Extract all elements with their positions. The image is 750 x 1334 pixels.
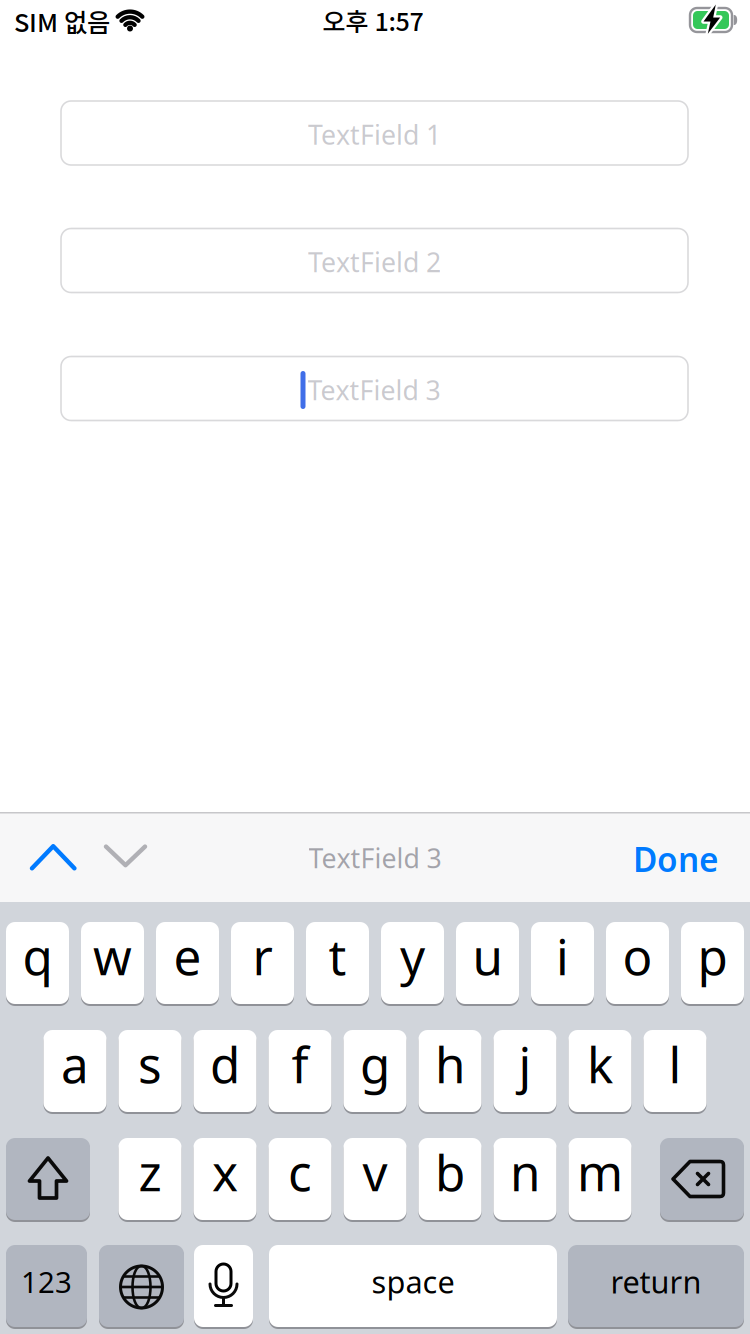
button[interactable]: Shift [6, 1137, 90, 1221]
staticText: z [138, 1139, 161, 1205]
button[interactable]: Next keyboard [99, 1244, 184, 1328]
staticText: m [577, 1139, 623, 1205]
button[interactable]: TextField 3 [61, 356, 688, 420]
button[interactable]: p [681, 921, 744, 1005]
staticText: h [435, 1031, 465, 1097]
button[interactable]: TextField 1 [61, 101, 688, 165]
button[interactable]: Delete [660, 1137, 744, 1221]
staticText: TextField 3 [308, 840, 441, 876]
button[interactable]: j [493, 1029, 556, 1113]
button[interactable]: Done [633, 837, 719, 881]
staticText: TextField 3 [307, 372, 440, 408]
staticText: s [138, 1031, 162, 1097]
staticText: Done [633, 837, 719, 881]
staticText: t [328, 923, 346, 989]
button[interactable]: space [269, 1244, 557, 1328]
button[interactable]: a [43, 1029, 106, 1113]
staticText: k [587, 1031, 613, 1097]
button[interactable]: Dictate [194, 1244, 253, 1328]
staticText: c [288, 1139, 312, 1205]
staticText: x [212, 1139, 238, 1205]
staticText: v [362, 1139, 387, 1205]
button[interactable]: s [118, 1029, 181, 1113]
staticText: q [22, 923, 52, 989]
button[interactable]: c [268, 1137, 331, 1221]
button[interactable]: x [193, 1137, 256, 1221]
button[interactable]: u [456, 921, 519, 1005]
staticText: b [435, 1139, 465, 1205]
button[interactable]: e [156, 921, 219, 1005]
button[interactable]: d [193, 1029, 256, 1113]
staticText: return [610, 1261, 701, 1302]
staticText: n [510, 1139, 540, 1205]
button[interactable]: Previous field [22, 833, 84, 883]
staticText: space [371, 1261, 454, 1302]
staticText: 오후 1:57 [322, 2, 423, 38]
button[interactable]: v [343, 1137, 406, 1221]
button[interactable]: b [418, 1137, 481, 1221]
staticText: u [472, 923, 502, 989]
staticText: l [668, 1031, 681, 1097]
button[interactable]: y [381, 921, 444, 1005]
button[interactable]: h [418, 1029, 481, 1113]
button[interactable]: l [643, 1029, 706, 1113]
staticText: p [697, 923, 727, 989]
button[interactable]: w [81, 921, 144, 1005]
staticText: w [93, 923, 132, 989]
staticText: SIM 없음 [14, 3, 110, 39]
button[interactable]: return [568, 1244, 744, 1328]
staticText: TextField 2 [308, 244, 441, 280]
staticText: TextField 1 [308, 117, 441, 152]
staticText: i [556, 923, 569, 989]
staticText: d [210, 1031, 240, 1097]
button[interactable]: g [343, 1029, 406, 1113]
button[interactable]: k [568, 1029, 631, 1113]
staticText: j [518, 1031, 531, 1097]
button[interactable]: f [268, 1029, 331, 1113]
button[interactable]: m [568, 1137, 631, 1221]
button[interactable]: q [6, 921, 69, 1005]
button[interactable]: n [493, 1137, 556, 1221]
staticText: 123 [21, 1262, 72, 1301]
button[interactable]: i [531, 921, 594, 1005]
staticText: g [360, 1031, 390, 1097]
button[interactable]: 123 [6, 1244, 87, 1328]
button[interactable]: Next field [92, 833, 154, 883]
button[interactable]: z [118, 1137, 181, 1221]
button[interactable]: r [231, 921, 294, 1005]
staticText: r [252, 923, 272, 989]
button[interactable]: TextField 2 [61, 228, 688, 292]
staticText: a [61, 1031, 89, 1097]
staticText: y [400, 923, 425, 989]
staticText: o [622, 923, 652, 989]
staticText: e [173, 923, 201, 989]
button[interactable]: o [606, 921, 669, 1005]
staticText: f [291, 1031, 308, 1097]
button[interactable]: t [306, 921, 369, 1005]
